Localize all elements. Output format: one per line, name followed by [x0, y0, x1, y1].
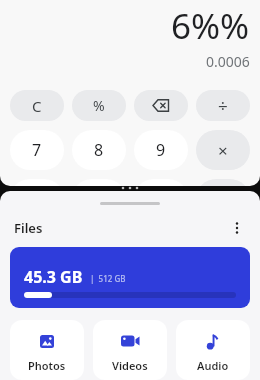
- staticText: Photos: [28, 358, 66, 373]
- staticText: ×: [218, 139, 228, 162]
- button[interactable]: Videos: [93, 320, 167, 380]
- button[interactable]: %: [72, 90, 126, 121]
- button[interactable]: ×: [196, 130, 250, 170]
- staticText: Videos: [112, 358, 148, 373]
- staticText: 9: [156, 139, 166, 161]
- staticText: ÷: [218, 94, 228, 117]
- button[interactable]: 7: [10, 130, 64, 170]
- button[interactable]: C: [10, 90, 64, 121]
- button[interactable]: ÷: [196, 90, 250, 121]
- button[interactable]: 45.3 GB: [10, 247, 250, 308]
- button[interactable]: Photos: [10, 320, 84, 380]
- button[interactable]: Audio: [176, 320, 250, 380]
- staticText: | 512 GB: [90, 273, 126, 284]
- staticText: 45.3 GB: [24, 266, 83, 288]
- button[interactable]: [134, 90, 188, 121]
- button[interactable]: [134, 179, 188, 186]
- button[interactable]: [196, 179, 250, 186]
- button[interactable]: [230, 221, 244, 235]
- staticText: 7: [32, 139, 42, 161]
- staticText: Files: [14, 219, 43, 237]
- staticText: Audio: [197, 358, 229, 373]
- staticText: 0.0006: [206, 52, 250, 71]
- button[interactable]: 9: [134, 130, 188, 170]
- button[interactable]: [10, 179, 64, 186]
- staticText: C: [32, 96, 42, 116]
- button[interactable]: [72, 179, 126, 186]
- staticText: 8: [94, 139, 104, 161]
- button[interactable]: 8: [72, 130, 126, 170]
- staticText: %: [93, 96, 105, 115]
- staticText: 6%%: [171, 2, 250, 50]
